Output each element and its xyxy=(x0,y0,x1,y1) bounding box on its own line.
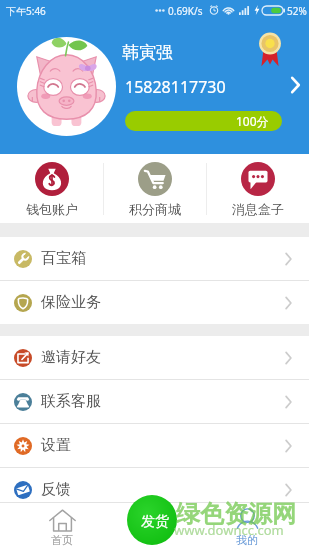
staticText: 百宝箱 xyxy=(41,249,86,268)
button[interactable]: 我的 xyxy=(185,502,309,550)
button[interactable]: 消息盒子 xyxy=(207,154,309,223)
staticText: 下午5:46 xyxy=(6,4,46,18)
staticText: 100分 xyxy=(236,113,269,129)
button[interactable]: 钱包账户 xyxy=(0,154,103,223)
staticText: 发货 xyxy=(141,513,169,531)
staticText: 绿色资源网 xyxy=(176,499,296,529)
staticText: 韩寅强 xyxy=(122,42,173,63)
button[interactable]: 百宝箱 xyxy=(0,237,309,280)
staticText: 0.69K/s xyxy=(168,4,203,18)
staticText: 钱包账户 xyxy=(26,201,78,217)
button[interactable]: 首页 xyxy=(0,502,124,550)
staticText: 设置 xyxy=(41,436,71,455)
button[interactable]: 邀请好友 xyxy=(0,336,309,379)
button[interactable]: 积分商城 xyxy=(104,154,206,223)
button[interactable]: 发货 xyxy=(127,495,177,545)
button[interactable]: 反馈 xyxy=(0,468,309,511)
button[interactable]: 100分 xyxy=(125,111,282,131)
staticText: 消息盒子 xyxy=(232,201,284,217)
staticText: 我的 xyxy=(236,533,258,547)
button[interactable]: 保险业务 xyxy=(0,281,309,324)
staticText: 邀请好友 xyxy=(41,348,101,367)
staticText: www.downcc.com xyxy=(174,521,284,539)
button[interactable]: 联系客服 xyxy=(0,380,309,423)
button[interactable]: User avatar xyxy=(17,37,116,136)
staticText: 保险业务 xyxy=(41,293,101,312)
staticText: 首页 xyxy=(51,533,73,547)
staticText: 联系客服 xyxy=(41,392,101,411)
staticText: 52% xyxy=(287,4,307,18)
staticText: 反馈 xyxy=(41,480,71,499)
staticText: 积分商城 xyxy=(129,201,181,217)
staticText: 15828117730 xyxy=(125,76,226,98)
button[interactable]: 设置 xyxy=(0,424,309,467)
button[interactable]: Medal level xyxy=(257,33,283,68)
